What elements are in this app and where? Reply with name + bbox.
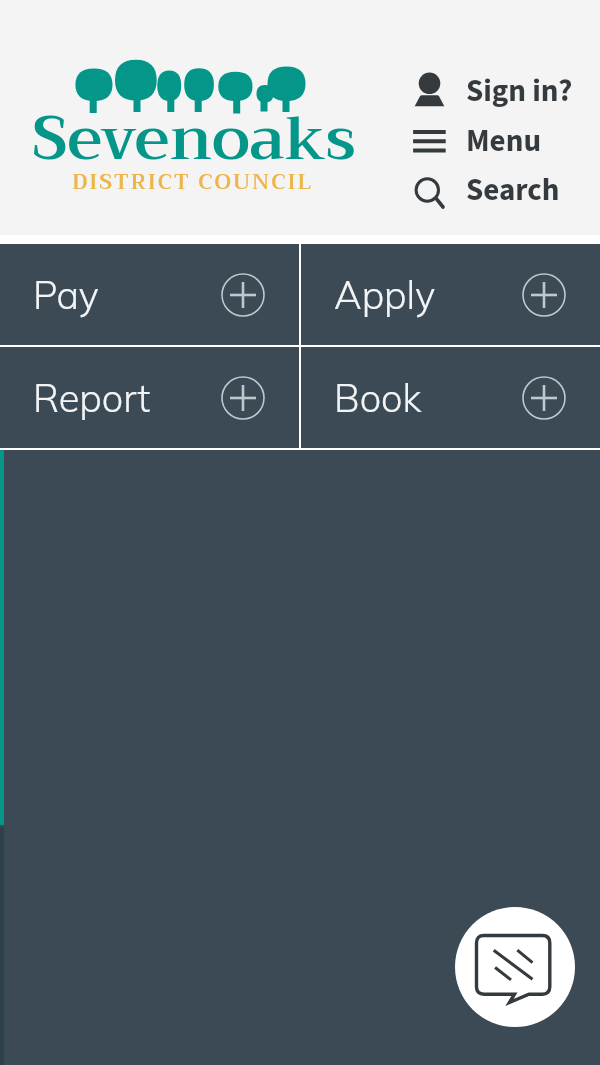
button[interactable]: Menu <box>413 119 542 161</box>
staticText: DISTRICT COUNCIL <box>72 163 314 201</box>
button[interactable]: Book <box>301 347 600 448</box>
staticText: Apply <box>334 271 436 319</box>
staticText: Book <box>334 374 422 422</box>
staticText: Search <box>466 168 560 210</box>
button[interactable]: Apply <box>301 244 600 345</box>
staticText: Pay <box>33 271 99 319</box>
button[interactable]: Search <box>413 168 560 210</box>
staticText: Report <box>33 374 151 422</box>
staticText: Menu <box>466 119 542 161</box>
staticText: Sign in? <box>466 69 573 111</box>
button[interactable]: Sign in? <box>413 69 573 111</box>
staticText: Sevenoaks <box>32 86 356 192</box>
button[interactable]: Report <box>0 347 299 448</box>
button[interactable]: Chat with us <box>455 907 575 1027</box>
button[interactable]: Pay <box>0 244 299 345</box>
